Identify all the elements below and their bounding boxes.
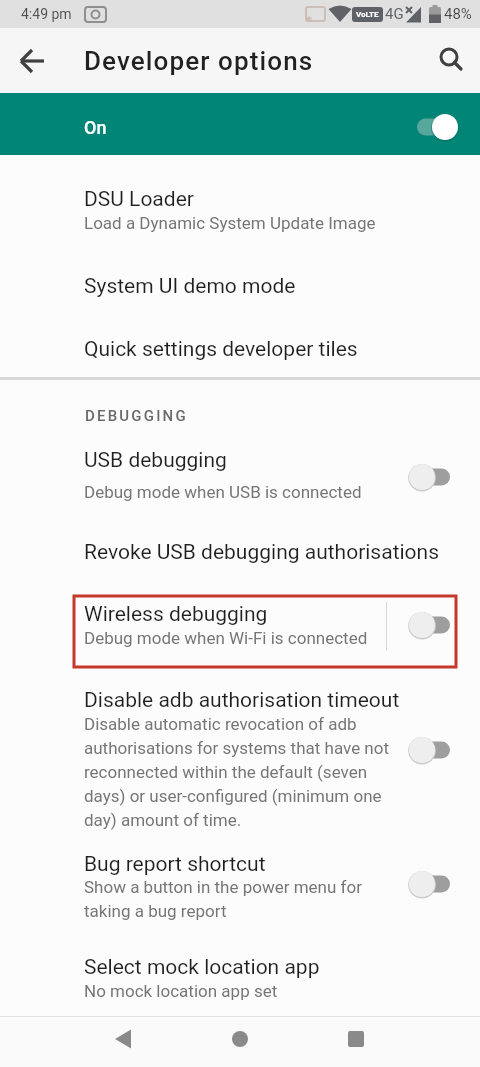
staticText: Quick settings developer tiles xyxy=(84,337,358,362)
button[interactable] xyxy=(95,1016,155,1067)
button[interactable] xyxy=(0,436,480,522)
button[interactable] xyxy=(0,93,480,155)
staticText: Revoke USB debugging authorisations xyxy=(84,540,440,565)
button[interactable] xyxy=(0,672,480,846)
staticText: Show a button in the power menu for taki… xyxy=(84,877,362,921)
button[interactable] xyxy=(0,256,480,318)
staticText: Disable adb authorisation timeout xyxy=(84,688,400,713)
staticText: Disable automatic revocation of adb auth… xyxy=(84,714,390,830)
staticText: Load a Dynamic System Update Image xyxy=(84,213,376,233)
staticText: On xyxy=(84,117,107,138)
button[interactable] xyxy=(0,522,480,582)
staticText: Select mock location app xyxy=(84,955,320,980)
button[interactable] xyxy=(0,318,480,379)
button[interactable] xyxy=(210,1016,270,1067)
staticText: Wireless debugging xyxy=(84,602,268,627)
button[interactable] xyxy=(326,1016,386,1067)
staticText: System UI demo mode xyxy=(84,274,296,299)
button[interactable] xyxy=(428,38,474,84)
staticText: VoLTE xyxy=(356,10,379,19)
staticText: Bug report shortcut xyxy=(84,852,266,877)
staticText: Debug mode when Wi-Fi is connected xyxy=(84,628,368,648)
staticText: 4G xyxy=(385,5,404,23)
button[interactable] xyxy=(10,38,56,84)
staticText: 48% xyxy=(444,5,472,23)
staticText: No mock location app set xyxy=(84,981,278,1001)
staticText: 4:49 pm xyxy=(21,6,72,22)
staticText: DSU Loader xyxy=(84,187,194,212)
button[interactable] xyxy=(0,940,480,1016)
staticText: Developer options xyxy=(84,46,314,76)
button[interactable] xyxy=(0,158,480,250)
staticText: DEBUGGING xyxy=(85,407,188,425)
button[interactable] xyxy=(0,846,480,940)
button[interactable] xyxy=(74,596,456,667)
staticText: USB debugging xyxy=(84,448,227,473)
staticText: Debug mode when USB is connected xyxy=(84,482,362,502)
